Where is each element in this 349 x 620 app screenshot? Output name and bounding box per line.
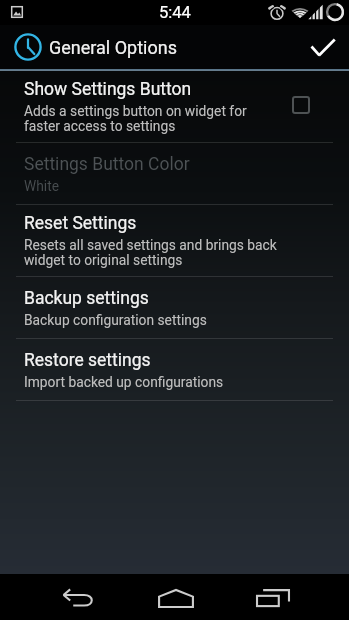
button[interactable]: Recent apps <box>243 580 303 616</box>
button[interactable]: Restore settings <box>0 339 349 400</box>
button[interactable]: Show Settings Button <box>0 71 349 142</box>
button[interactable]: Done <box>297 25 349 69</box>
staticText: Restore settings <box>24 350 151 371</box>
staticText: Resets all saved settings and brings bac… <box>24 237 282 268</box>
staticText: 5:44 <box>159 3 191 22</box>
staticText: Settings Button Color <box>24 154 190 175</box>
staticText: General Options <box>49 37 177 58</box>
button[interactable]: Backup settings <box>0 277 349 338</box>
button[interactable]: Home <box>146 580 206 616</box>
staticText: Adds a settings button on widget for fas… <box>24 103 282 134</box>
staticText: Backup settings <box>24 288 149 309</box>
staticText: Backup configuration settings <box>24 312 207 328</box>
staticText: Import backed up configurations <box>24 374 224 390</box>
staticText: Show Settings Button <box>24 79 192 100</box>
staticText: White <box>24 178 60 194</box>
staticText: Reset Settings <box>24 213 137 234</box>
button[interactable]: Reset Settings <box>0 205 349 276</box>
button[interactable]: Back <box>48 580 108 616</box>
